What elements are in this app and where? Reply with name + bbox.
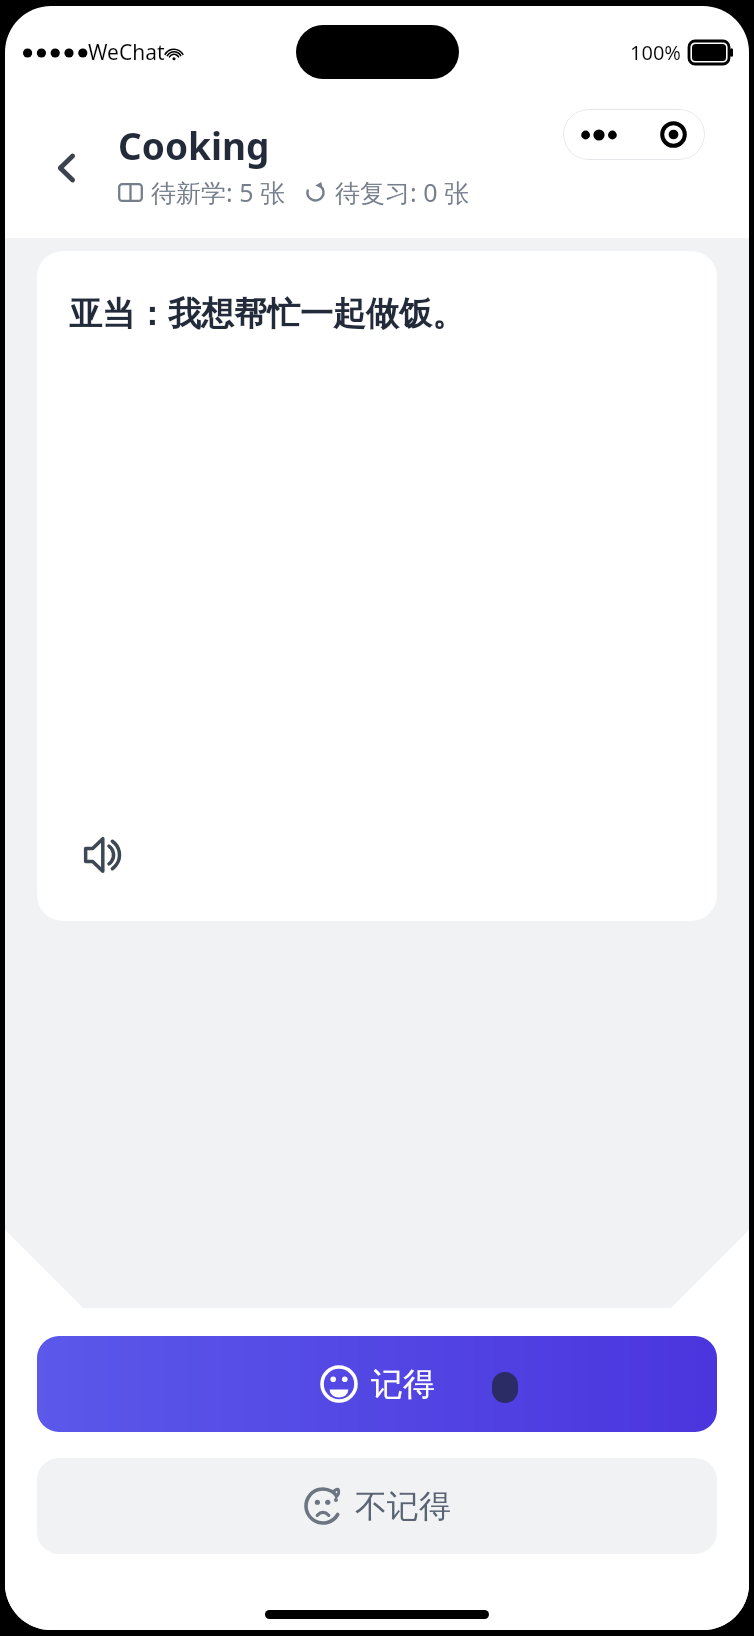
staticText: 不记得 <box>355 1486 451 1526</box>
staticText: Cooking <box>118 120 270 170</box>
button[interactable]: 记得 <box>37 1336 717 1432</box>
button[interactable]: Play audio <box>79 829 131 881</box>
staticText: 100% <box>630 39 681 66</box>
staticText: 亚当：我想帮忙一起做饭。 <box>69 293 465 335</box>
staticText: 记得 <box>371 1364 435 1404</box>
staticText: WeChat <box>88 38 165 67</box>
button[interactable]: 不记得 <box>37 1458 717 1554</box>
button[interactable]: 亚当：我想帮忙一起做饭。 <box>37 251 717 921</box>
button[interactable]: More options <box>563 109 705 160</box>
staticText: 待复习: 0 张 <box>335 175 470 209</box>
staticText: 待新学: 5 张 <box>151 175 286 209</box>
button[interactable]: Back <box>35 136 99 200</box>
